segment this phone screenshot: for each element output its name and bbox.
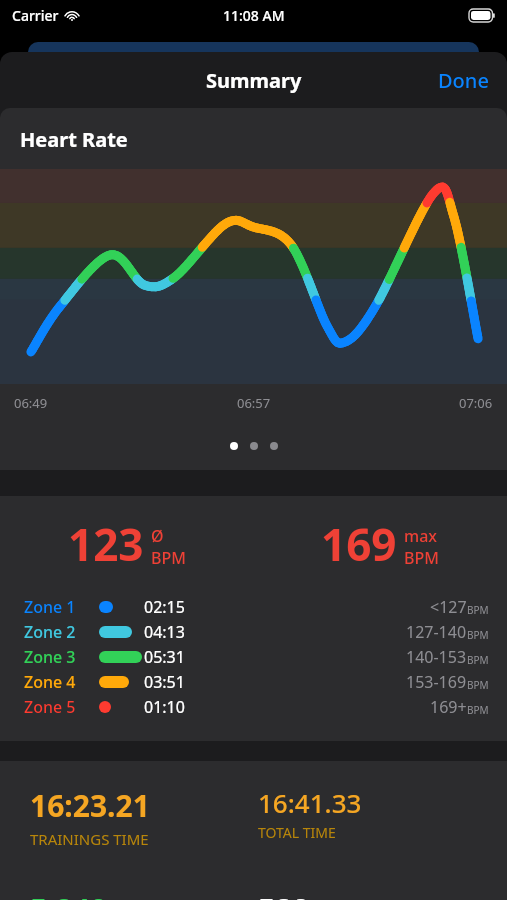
button[interactable]: Zone 2 [0, 619, 507, 644]
staticText: <127 [430, 596, 467, 618]
button[interactable]: 123 [0, 496, 507, 741]
staticText: 5.240 [30, 889, 108, 900]
staticText: 16:41.33 [258, 785, 362, 820]
button[interactable]: Zone 3 [0, 644, 507, 669]
staticText: BPM [467, 628, 489, 642]
staticText: BPM [151, 547, 186, 569]
staticText: 06:57 [237, 394, 271, 412]
staticText: Zone 4 [24, 671, 86, 693]
staticText: Carrier [12, 6, 59, 25]
staticText: Zone 1 [24, 596, 86, 618]
staticText: Heart Rate [20, 126, 128, 153]
button[interactable]: Zone 5 [0, 694, 507, 719]
staticText: 580 [258, 889, 310, 900]
button[interactable]: Heart Rate [0, 108, 507, 470]
staticText: 127-140 [406, 621, 467, 643]
staticText: Zone 3 [24, 646, 86, 668]
button[interactable]: Done [420, 57, 507, 104]
staticText: 01:10 [144, 696, 202, 718]
staticText: BPM [404, 547, 439, 569]
staticText: Done [438, 67, 489, 94]
staticText: 07:06 [459, 394, 493, 412]
staticText: BPM [467, 653, 489, 667]
staticText: 02:15 [144, 596, 202, 618]
staticText: Zone 2 [24, 621, 86, 643]
staticText: Summary [206, 67, 302, 94]
staticText: 16:23.21 [30, 785, 150, 826]
staticText: Zone 5 [24, 696, 86, 718]
staticText: BPM [467, 603, 489, 617]
button[interactable]: 16:23.21 [0, 761, 507, 900]
staticText: 169+ [430, 696, 467, 718]
staticText: 06:49 [14, 394, 48, 412]
staticText: 169 [321, 514, 397, 574]
staticText: max [404, 525, 437, 547]
button[interactable]: Zone 1 [0, 594, 507, 619]
staticText: 123 [68, 514, 144, 574]
button[interactable]: Zone 4 [0, 669, 507, 694]
staticText: 03:51 [144, 671, 202, 693]
staticText: Ø [151, 525, 164, 547]
staticText: 140-153 [406, 646, 467, 668]
staticText: BPM [467, 703, 489, 717]
staticText: TOTAL TIME [258, 823, 336, 842]
staticText: BPM [467, 678, 489, 692]
staticText: TRAININGS TIME [30, 829, 149, 849]
staticText: 153-169 [406, 671, 467, 693]
staticText: 11:08 AM [223, 6, 285, 25]
staticText: 05:31 [144, 646, 202, 668]
staticText: 04:13 [144, 621, 202, 643]
